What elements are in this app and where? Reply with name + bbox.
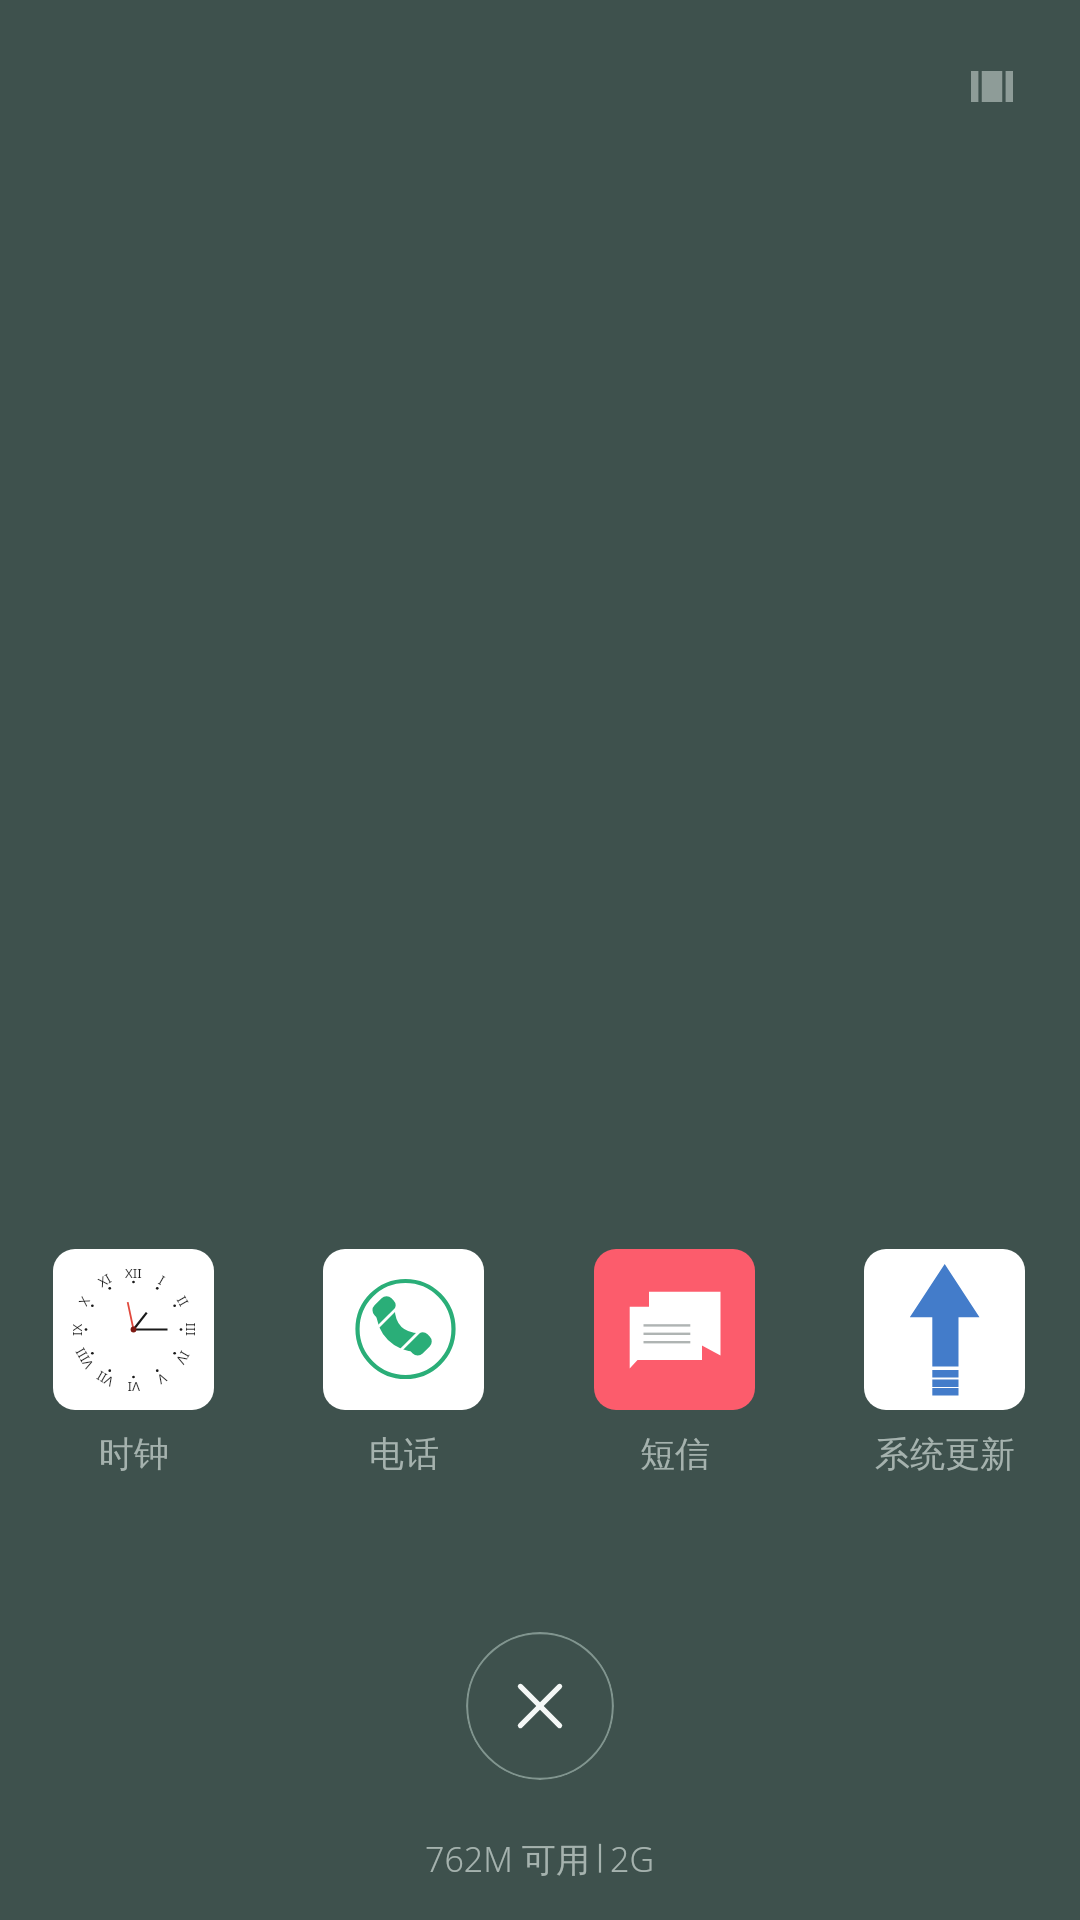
staticText: 电话 — [369, 1432, 439, 1476]
staticText: 762M 可用 — [425, 1836, 590, 1882]
staticText: 2G — [610, 1836, 655, 1882]
button[interactable]: Close all apps — [466, 1632, 614, 1780]
button[interactable]: Switch layout — [950, 44, 1034, 128]
staticText: 系统更新 — [875, 1432, 1015, 1476]
staticText: 时钟 — [99, 1432, 169, 1476]
button[interactable]: 系统更新 — [864, 1249, 1025, 1476]
button[interactable]: 时钟 — [53, 1249, 214, 1476]
button[interactable]: 电话 — [323, 1249, 484, 1476]
button[interactable]: 短信 — [594, 1249, 755, 1476]
staticText: 短信 — [640, 1432, 710, 1476]
